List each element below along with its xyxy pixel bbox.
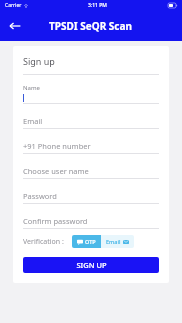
staticText: Sign up [23, 55, 55, 67]
button[interactable]: Name [23, 84, 159, 104]
staticText: OTP [85, 238, 96, 245]
staticText: Email [23, 116, 43, 126]
button[interactable]: Confirm password [23, 215, 159, 229]
staticText: TPSDI SeQR Scan [49, 19, 133, 33]
staticText: +91 Phone number [23, 141, 91, 151]
staticText: Confirm password [23, 216, 88, 226]
button[interactable]: Email [23, 115, 159, 129]
staticText: SIGN UP [76, 260, 107, 270]
staticText: Carrier [5, 2, 22, 9]
button[interactable]: SIGN UP [23, 257, 159, 273]
staticText: Verification : [23, 237, 64, 247]
button[interactable]: Back [4, 15, 26, 37]
staticText: Email [106, 238, 121, 245]
button[interactable]: OTP [72, 235, 101, 248]
staticText: Password [23, 191, 57, 201]
staticText: 3:11 PM [88, 2, 107, 9]
button[interactable]: Password [23, 190, 159, 204]
button[interactable]: +91 Phone number [23, 140, 159, 154]
button[interactable]: Email [101, 235, 134, 248]
staticText: Choose user name [23, 166, 89, 176]
button[interactable]: Choose user name [23, 165, 159, 179]
staticText: Name [23, 84, 40, 92]
